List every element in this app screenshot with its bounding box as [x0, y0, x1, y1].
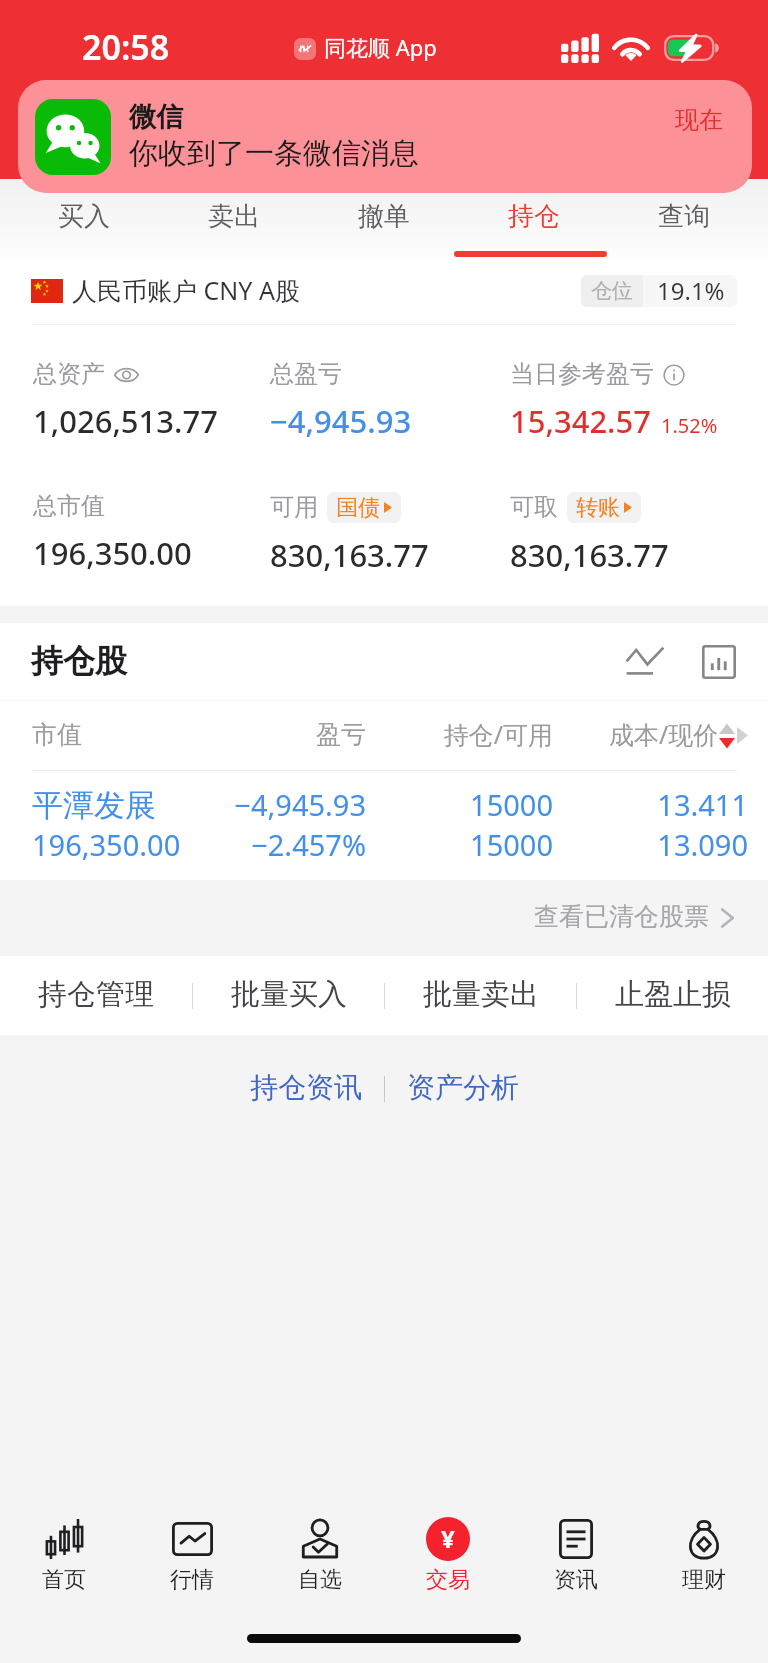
- button[interactable]: 理财: [640, 1499, 768, 1611]
- button[interactable]: 微信: [18, 80, 752, 193]
- staticText: 总盈亏: [270, 360, 342, 389]
- staticText: 现在: [675, 106, 723, 135]
- staticText: 总市值: [33, 492, 105, 521]
- staticText: 买入: [58, 202, 110, 233]
- staticText: 资讯: [554, 1567, 598, 1593]
- staticText: 持仓资讯: [250, 1072, 362, 1106]
- staticText: 平潭发展: [32, 788, 199, 825]
- button[interactable]: 转账: [576, 492, 632, 523]
- button[interactable]: 查询: [609, 179, 759, 258]
- button[interactable]: 首页: [0, 1499, 128, 1611]
- staticText: −2.457%: [199, 829, 366, 864]
- staticText: 可用: [270, 493, 318, 522]
- button[interactable]: 批量卖出: [385, 956, 576, 1035]
- staticText: 批量卖出: [423, 978, 539, 1013]
- staticText: 查看已清仓股票: [534, 903, 709, 933]
- staticText: 可取: [510, 493, 558, 522]
- button[interactable]: 持仓资讯: [228, 1062, 384, 1116]
- staticText: −4,945.93: [270, 404, 412, 441]
- button[interactable]: 卖出: [159, 179, 309, 258]
- button[interactable]: ¥: [384, 1499, 512, 1611]
- button[interactable]: 自选: [256, 1499, 384, 1611]
- staticText: 13.090: [553, 829, 748, 864]
- button[interactable]: 资产分析: [385, 1062, 541, 1116]
- staticText: 13.411: [553, 789, 748, 824]
- staticText: 830,163.77: [510, 538, 669, 575]
- staticText: 196,350.00: [32, 829, 199, 864]
- staticText: 20:58: [82, 28, 170, 69]
- staticText: 持仓: [508, 202, 560, 233]
- button[interactable]: 撤单: [309, 179, 459, 258]
- staticText: 持仓/可用: [366, 720, 553, 751]
- staticText: 盈亏: [199, 721, 366, 751]
- staticText: 成本/现价: [609, 720, 719, 751]
- staticText: 当日参考盈亏: [510, 360, 654, 389]
- button[interactable]: Line chart view: [618, 635, 672, 689]
- staticText: 19.1%: [657, 277, 725, 306]
- staticText: 196,350.00: [33, 536, 192, 573]
- button[interactable]: 平潭发展: [0, 771, 768, 880]
- staticText: 止盈止损: [615, 978, 731, 1013]
- button[interactable]: 资讯: [512, 1499, 640, 1611]
- button[interactable]: Bar chart view: [692, 635, 746, 689]
- button[interactable]: 持仓管理: [0, 956, 192, 1035]
- staticText: 仓位: [591, 279, 633, 304]
- staticText: 查询: [658, 202, 710, 233]
- staticText: 人民币账户 CNY A股: [72, 276, 300, 307]
- button[interactable]: 查看已清仓股票: [0, 880, 735, 956]
- button[interactable]: 持仓: [459, 179, 609, 258]
- staticText: 15,342.57: [510, 404, 652, 441]
- button[interactable]: 行情: [128, 1499, 256, 1611]
- staticText: 1,026,513.77: [33, 404, 218, 441]
- staticText: 15000: [366, 829, 553, 864]
- staticText: 理财: [682, 1567, 726, 1593]
- staticText: 撤单: [358, 202, 410, 233]
- staticText: 15000: [366, 789, 553, 824]
- button[interactable]: 买入: [9, 179, 159, 258]
- staticText: −4,945.93: [199, 789, 366, 824]
- staticText: 国债: [336, 495, 380, 521]
- staticText: 830,163.77: [270, 538, 429, 575]
- staticText: ¥: [441, 1525, 455, 1554]
- staticText: 总资产: [33, 360, 105, 389]
- button[interactable]: 止盈止损: [577, 956, 768, 1035]
- button[interactable]: 人民币账户 CNY A股: [31, 258, 737, 324]
- staticText: 持仓股: [31, 643, 127, 681]
- staticText: 你收到了一条微信消息: [129, 137, 419, 172]
- staticText: 1.52%: [661, 414, 718, 438]
- staticText: 交易: [426, 1567, 470, 1593]
- staticText: 资产分析: [407, 1072, 519, 1106]
- staticText: 持仓管理: [38, 978, 154, 1013]
- staticText: 市值: [32, 721, 199, 751]
- button[interactable]: 批量买入: [193, 956, 384, 1035]
- button[interactable]: 国债: [336, 492, 392, 523]
- staticText: 自选: [298, 1567, 342, 1593]
- staticText: 微信: [129, 102, 183, 134]
- staticText: 同花顺 App: [324, 35, 437, 62]
- staticText: 批量买入: [231, 978, 347, 1013]
- staticText: 转账: [576, 495, 620, 521]
- staticText: 行情: [170, 1567, 214, 1593]
- staticText: 卖出: [208, 202, 260, 233]
- staticText: 首页: [42, 1567, 86, 1593]
